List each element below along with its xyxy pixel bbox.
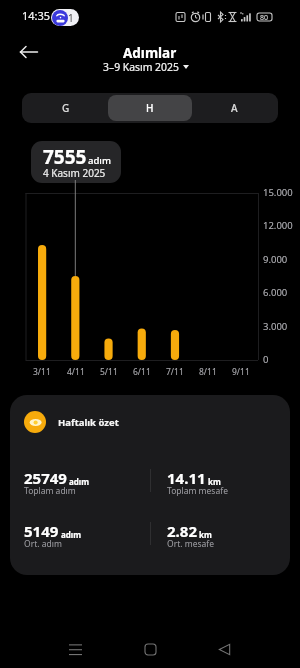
button[interactable]: Home: [135, 634, 165, 664]
staticText: A: [231, 101, 238, 115]
staticText: 3/11: [33, 366, 51, 378]
staticText: 3–9 Kasım 2025: [103, 60, 179, 74]
staticText: 5/11: [100, 366, 118, 378]
staticText: 4 Kasım 2025: [43, 166, 106, 180]
button[interactable]: Back: [209, 634, 239, 664]
staticText: Haftalık özet: [58, 416, 119, 429]
staticText: km: [199, 529, 212, 540]
staticText: km: [208, 476, 221, 487]
staticText: Toplam adım: [24, 485, 76, 497]
button[interactable]: Recent apps: [60, 634, 90, 664]
staticText: 3.000: [263, 320, 288, 333]
staticText: Ort. adım: [24, 538, 62, 550]
button[interactable]: 3–9 Kasım 2025: [103, 60, 189, 74]
button[interactable]: A: [192, 95, 276, 121]
staticText: 9/11: [232, 366, 250, 378]
staticText: adım: [88, 154, 111, 167]
staticText: 5149: [24, 521, 59, 541]
staticText: 15.000: [263, 186, 293, 199]
staticText: 80: [260, 13, 269, 23]
staticText: 7/11: [166, 366, 184, 378]
staticText: G: [62, 101, 70, 115]
staticText: 14:35: [22, 8, 51, 23]
button[interactable]: Haftalık özet: [24, 411, 119, 433]
button[interactable]: Back: [15, 38, 43, 66]
staticText: 4/11: [67, 366, 85, 378]
staticText: 9.000: [263, 253, 288, 266]
staticText: 2.82: [167, 521, 197, 541]
staticText: Adımlar: [123, 44, 177, 62]
staticText: 0: [263, 353, 269, 366]
staticText: 12.000: [263, 219, 293, 232]
staticText: 6.000: [263, 286, 288, 299]
staticText: adım: [69, 476, 90, 487]
staticText: Toplam mesafe: [167, 485, 228, 497]
staticText: 7555: [43, 144, 87, 170]
staticText: H: [146, 101, 154, 115]
staticText: Ort. mesafe: [167, 538, 215, 550]
button[interactable]: G: [24, 95, 108, 121]
staticText: 14.11: [167, 468, 206, 488]
staticText: 1: [68, 11, 74, 25]
staticText: 8/11: [199, 366, 217, 378]
staticText: 6/11: [133, 366, 151, 378]
staticText: 25749: [24, 468, 67, 488]
button[interactable]: H: [108, 95, 192, 121]
staticText: adım: [61, 529, 82, 540]
